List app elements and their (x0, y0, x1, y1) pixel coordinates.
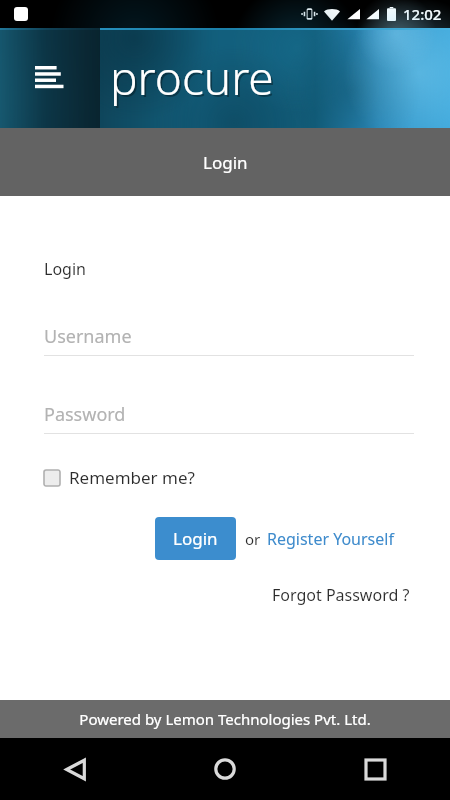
staticText: or (245, 529, 261, 549)
staticText: Password (44, 402, 126, 427)
button[interactable]: Username (44, 324, 414, 356)
button[interactable]: Forgot Password ? (268, 580, 414, 610)
staticText: Login (203, 151, 248, 174)
staticText: Remember me? (69, 466, 195, 489)
staticText: Forgot Password ? (272, 584, 410, 606)
button[interactable]: Password (44, 402, 414, 434)
staticText: procure (112, 48, 276, 111)
staticText: Login (173, 527, 218, 550)
button[interactable]: Back (0, 738, 150, 800)
staticText: 12:02 (403, 4, 442, 24)
staticText: Username (44, 324, 132, 349)
button[interactable]: Remember me? (44, 464, 195, 491)
staticText: Login (44, 258, 86, 280)
staticText: Register Yourself (267, 528, 394, 550)
button[interactable]: Login (155, 517, 236, 560)
button[interactable]: Register Yourself (267, 528, 394, 550)
button[interactable]: Recent apps (300, 738, 450, 800)
staticText: procure (110, 46, 274, 109)
staticText: Powered by Lemon Technologies Pvt. Ltd. (79, 709, 371, 729)
button[interactable]: Open navigation menu (0, 28, 100, 128)
button[interactable]: Home (150, 738, 300, 800)
